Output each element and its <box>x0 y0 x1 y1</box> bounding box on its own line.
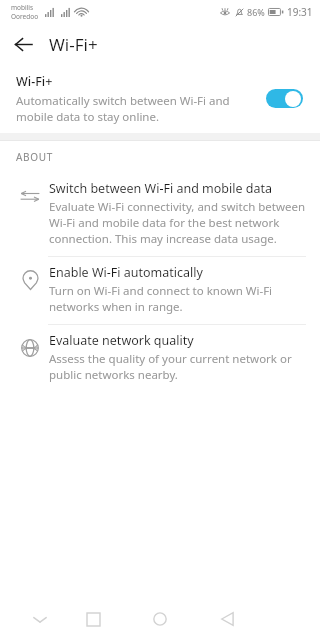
button[interactable]: Recent apps <box>72 598 114 640</box>
staticText: Switch between Wi-Fi and mobile data <box>49 180 272 197</box>
button[interactable]: Wi-Fi+ toggle <box>266 89 303 108</box>
staticText: Wi-Fi+ <box>16 73 53 90</box>
staticText: Evaluate Wi-Fi connectivity, and switch … <box>49 199 306 247</box>
staticText: ABOUT <box>16 150 54 164</box>
staticText: Enable Wi-Fi automatically <box>49 264 203 281</box>
button[interactable]: Home <box>139 598 181 640</box>
other: Switch between Wi-Fi and mobile data <box>13 179 47 213</box>
button[interactable]: Evaluate network quality <box>0 325 320 392</box>
button[interactable]: Hide navigation bar <box>19 598 61 640</box>
staticText: Wi-Fi+ <box>49 33 98 56</box>
button[interactable]: Switch between Wi-Fi and mobile data <box>0 173 320 256</box>
button[interactable]: Enable Wi-Fi automatically <box>0 257 320 324</box>
staticText: 86% <box>247 6 265 18</box>
button[interactable]: Wi-Fi+ <box>0 64 320 133</box>
staticText: Automatically switch between Wi-Fi and m… <box>16 93 230 124</box>
staticText: Evaluate network quality <box>49 332 194 349</box>
button[interactable]: Back <box>206 598 248 640</box>
staticText: Assess the quality of your current netwo… <box>49 351 292 383</box>
button[interactable]: Back <box>6 27 40 61</box>
other: Enable Wi-Fi automatically <box>13 263 47 297</box>
other: Evaluate network quality <box>13 331 47 365</box>
staticText: 19:31 <box>287 5 313 19</box>
staticText: Turn on Wi-Fi and connect to known Wi-Fi… <box>49 283 273 315</box>
staticText: Ooredoo <box>11 12 39 21</box>
staticText: mobilis <box>11 3 34 12</box>
